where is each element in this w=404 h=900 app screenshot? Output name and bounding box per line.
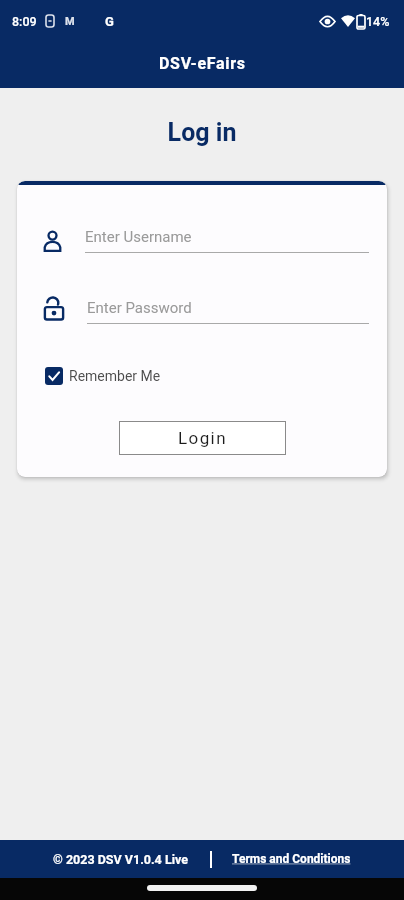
staticText: DSV-eFairs <box>159 54 246 73</box>
staticText: © 2023 DSV V1.0.4 Live <box>53 852 188 867</box>
staticText: Enter Password <box>87 299 192 317</box>
button[interactable]: Enter Password <box>42 299 369 324</box>
staticText: Remember Me <box>69 368 161 384</box>
staticText: M <box>65 15 75 28</box>
staticText: 14% <box>366 14 390 29</box>
button[interactable]: Enter Username <box>42 228 369 253</box>
staticText: Login <box>178 428 227 448</box>
staticText: Enter Username <box>85 228 192 246</box>
button[interactable]: Login <box>119 421 286 455</box>
staticText: G <box>105 14 114 29</box>
button[interactable]: Terms and Conditions <box>232 852 351 866</box>
staticText: 8:09 <box>12 14 37 29</box>
button[interactable]: Remember Me <box>45 367 161 385</box>
staticText: Log in <box>0 118 404 147</box>
